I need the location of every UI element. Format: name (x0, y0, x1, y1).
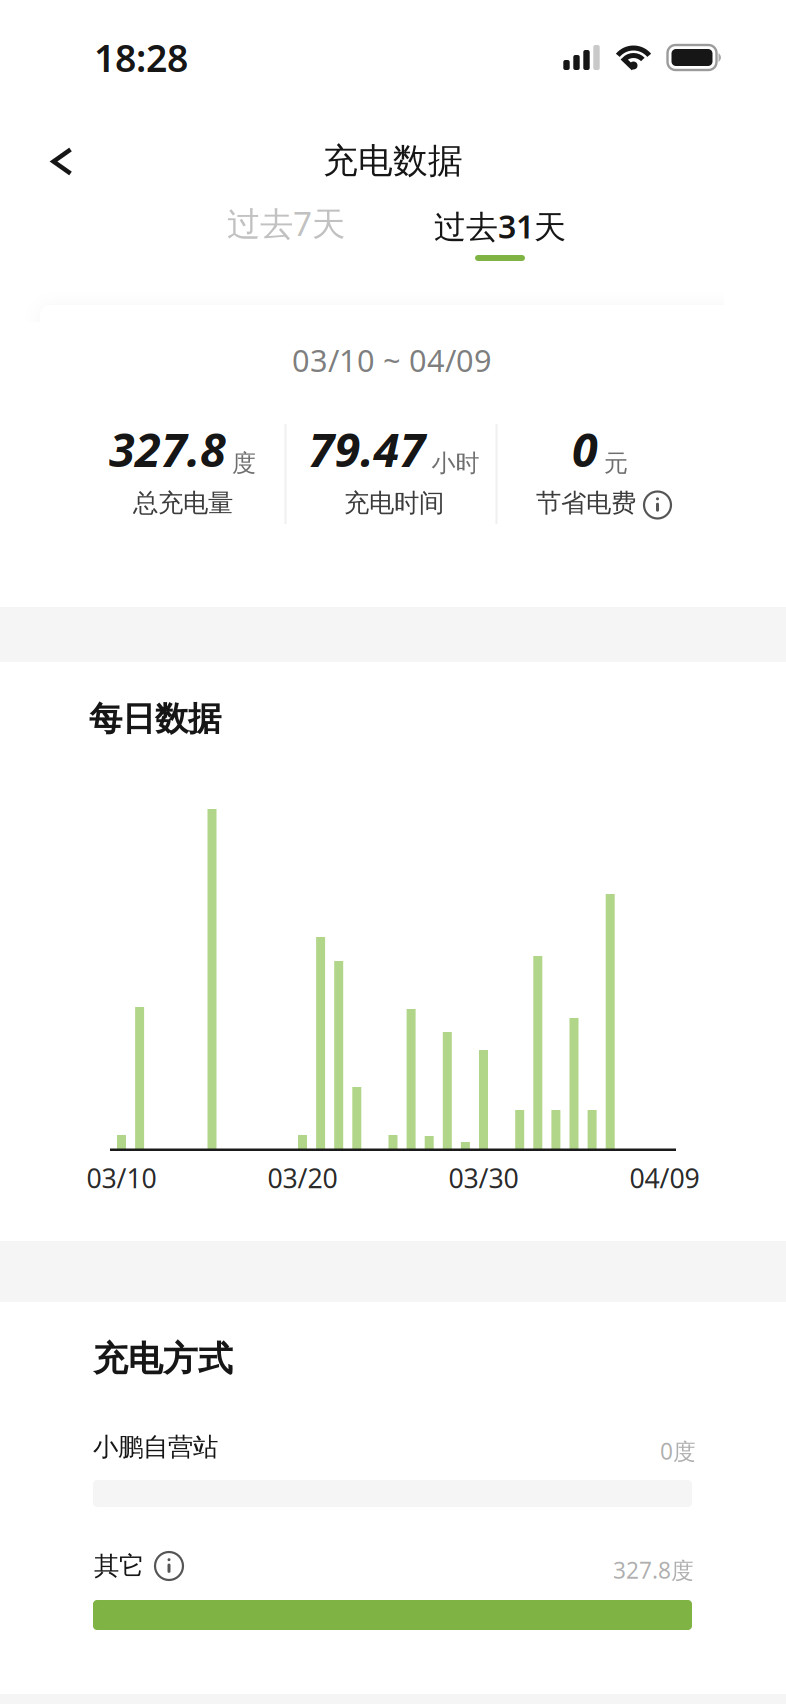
staticText: 327.8度 (613, 1555, 694, 1585)
staticText: 小鹏自营站 (93, 1431, 218, 1462)
staticText: 元 (604, 448, 628, 478)
staticText: 03/10 ~ 04/09 (292, 340, 492, 380)
staticText: 0度 (660, 1436, 696, 1466)
staticText: 03/20 (267, 1160, 337, 1196)
staticText: 充电方式 (93, 1338, 233, 1380)
staticText: 0 (572, 418, 598, 480)
staticText: 充电数据 (323, 140, 463, 182)
staticText: 其它 (94, 1550, 144, 1581)
staticText: 03/30 (448, 1160, 518, 1196)
staticText: 79.47 (308, 418, 425, 480)
staticText: 节省电费 (536, 487, 636, 518)
staticText: 327.8 (109, 418, 226, 480)
staticText: 充电时间 (344, 487, 444, 518)
button[interactable]: 过去31天 (395, 193, 605, 265)
staticText: 小时 (431, 448, 479, 478)
staticText: 过去31天 (434, 205, 566, 247)
staticText: 度 (232, 448, 256, 478)
button[interactable]: Other charging info (149, 1546, 189, 1586)
staticText: 18:28 (94, 33, 188, 82)
button[interactable]: 过去7天 (188, 191, 384, 255)
staticText: 04/09 (629, 1160, 699, 1196)
staticText: 03/10 (86, 1160, 156, 1196)
staticText: 总充电量 (133, 487, 233, 518)
button[interactable]: Back (34, 133, 90, 189)
button[interactable]: Savings info (637, 485, 677, 525)
staticText: 每日数据 (89, 698, 221, 739)
staticText: 过去7天 (227, 201, 345, 245)
